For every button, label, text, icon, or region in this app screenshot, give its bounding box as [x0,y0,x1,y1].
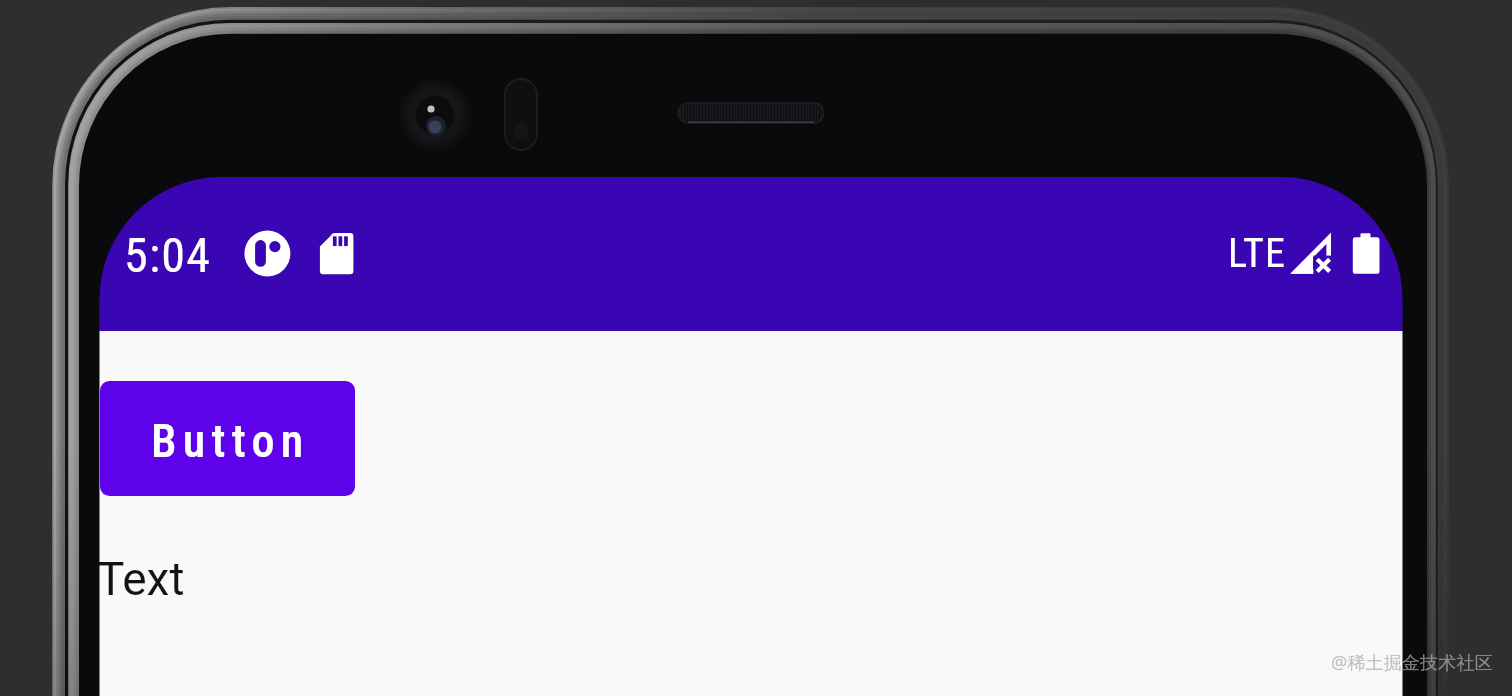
staticText: Button [151,414,310,468]
button[interactable]: Text [97,552,185,606]
staticText: @稀土掘金技术社区 [1331,650,1493,675]
button[interactable]: Button [100,381,355,496]
staticText: LTE [1228,230,1287,277]
staticText: Text [97,552,185,606]
staticText: 5:04 [124,227,212,283]
